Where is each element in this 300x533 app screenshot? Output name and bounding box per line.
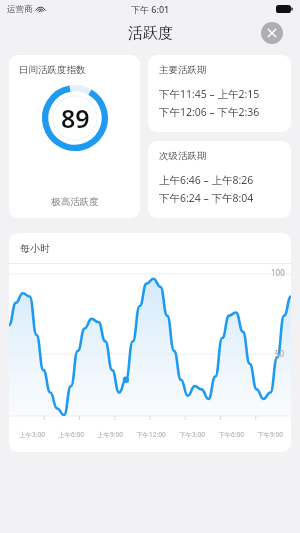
staticText: 每小时	[20, 242, 50, 255]
button[interactable]: 每小时	[9, 233, 291, 452]
staticText: 下午11:45 – 上午2:15	[159, 87, 285, 101]
staticText: 50	[275, 348, 285, 359]
staticText: 次级活跃期	[159, 150, 207, 162]
staticText: 活跃度	[128, 24, 173, 43]
staticText: 运营商	[7, 4, 33, 15]
staticText: 下午3:00	[179, 430, 205, 439]
staticText: 下午6:00	[218, 430, 244, 439]
staticText: 上午6:46 – 上午8:26	[159, 173, 285, 187]
staticText: 极高活跃度	[51, 196, 99, 208]
staticText: 主要活跃期	[159, 64, 207, 76]
staticText: 89	[61, 101, 90, 135]
button[interactable]: 日间活跃度指数	[9, 55, 140, 218]
button[interactable]: 关闭	[261, 22, 283, 44]
staticText: 上午6:00	[58, 430, 84, 439]
staticText: 日间活跃度指数	[19, 64, 86, 76]
staticText: 下午6:24 – 下午8:04	[159, 191, 285, 205]
staticText: 上午3:00	[19, 430, 45, 439]
staticText: 下午 6:01	[131, 3, 170, 15]
staticText: 上午9:00	[97, 430, 123, 439]
staticText: 下午9:00	[257, 430, 283, 439]
button[interactable]: 主要活跃期	[148, 55, 291, 132]
button[interactable]: 次级活跃期	[148, 141, 291, 218]
staticText: 下午12:00	[136, 430, 166, 439]
staticText: 下午12:06 – 下午2:36	[159, 105, 285, 119]
staticText: 100	[271, 267, 285, 278]
